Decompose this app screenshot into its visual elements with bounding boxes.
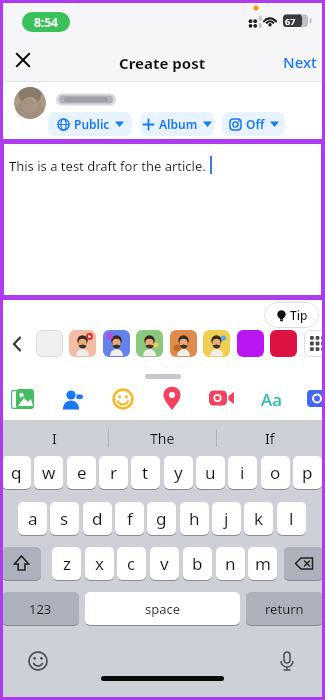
button[interactable]: l	[277, 502, 306, 535]
staticText: l	[289, 507, 294, 530]
button[interactable]: e	[67, 456, 96, 489]
button[interactable]	[111, 387, 135, 411]
staticText: 8:54	[34, 14, 58, 30]
button[interactable]	[170, 330, 197, 357]
staticText: u	[205, 461, 216, 484]
button[interactable]	[270, 330, 297, 357]
staticText: w	[42, 461, 56, 484]
button[interactable]: If	[216, 426, 324, 450]
button[interactable]: p	[293, 456, 322, 489]
button[interactable]: t	[131, 456, 160, 489]
button[interactable]: 8:54	[22, 12, 70, 32]
button[interactable]	[6, 332, 30, 356]
button[interactable]: space	[85, 592, 240, 625]
staticText: c	[127, 552, 136, 575]
staticText: f	[127, 507, 133, 530]
button[interactable]: j	[212, 502, 241, 535]
staticText: x	[95, 552, 104, 575]
button[interactable]	[2, 547, 41, 580]
button[interactable]: a	[18, 502, 47, 535]
button[interactable]: Next	[278, 48, 322, 76]
staticText: o	[270, 461, 281, 484]
button[interactable]: Album	[140, 112, 214, 136]
button[interactable]	[203, 330, 230, 357]
staticText: s	[60, 507, 69, 530]
staticText: n	[225, 552, 236, 575]
staticText: b	[192, 552, 203, 575]
button[interactable]	[36, 330, 63, 357]
staticText: j	[224, 507, 229, 530]
staticText: d	[92, 507, 103, 530]
button[interactable]: m	[248, 547, 277, 580]
staticText: Tip	[290, 307, 308, 323]
staticText: 67	[285, 15, 296, 27]
staticText: Create post	[119, 53, 206, 73]
staticText: Aa	[261, 388, 282, 411]
staticText: Next	[283, 52, 317, 72]
staticText: g	[156, 507, 167, 530]
button[interactable]: h	[180, 502, 209, 535]
staticText: e	[77, 461, 87, 484]
button[interactable]: k	[244, 502, 273, 535]
staticText: y	[174, 461, 183, 484]
button[interactable]: c	[117, 547, 146, 580]
button[interactable]	[307, 389, 325, 409]
button[interactable]: q	[2, 456, 31, 489]
staticText: h	[189, 507, 200, 530]
button[interactable]: g	[147, 502, 176, 535]
button[interactable]: d	[83, 502, 112, 535]
button[interactable]: x	[85, 547, 114, 580]
button[interactable]: u	[196, 456, 225, 489]
staticText: r	[110, 461, 118, 484]
button[interactable]	[161, 386, 183, 412]
staticText: Off	[246, 116, 265, 132]
button[interactable]: r	[99, 456, 128, 489]
staticText: The	[150, 429, 175, 448]
staticText: Album	[159, 116, 198, 132]
staticText: z	[63, 552, 71, 575]
staticText: m	[255, 552, 271, 575]
button[interactable]	[9, 46, 37, 74]
staticText: t	[142, 461, 149, 484]
button[interactable]: Off	[222, 112, 285, 136]
button[interactable]	[284, 547, 323, 580]
button[interactable]: Aa	[256, 386, 286, 412]
staticText: space	[145, 600, 181, 618]
button[interactable]: f	[115, 502, 144, 535]
button[interactable]: y	[164, 456, 193, 489]
button[interactable]: 123	[2, 592, 79, 625]
button[interactable]: o	[261, 456, 290, 489]
staticText: i	[240, 461, 245, 484]
button[interactable]: s	[50, 502, 79, 535]
staticText: a	[28, 507, 38, 530]
button[interactable]: The	[108, 426, 216, 450]
button[interactable]: I	[0, 426, 108, 450]
staticText: q	[11, 461, 22, 484]
staticText: return	[265, 600, 304, 618]
button[interactable]	[209, 389, 235, 409]
button[interactable]	[60, 387, 85, 412]
staticText: v	[160, 552, 169, 575]
staticText: I	[52, 429, 57, 448]
button[interactable]	[304, 330, 325, 357]
button[interactable]: return	[246, 592, 323, 625]
button[interactable]	[103, 330, 130, 357]
button[interactable]: v	[150, 547, 179, 580]
button[interactable]: b	[183, 547, 212, 580]
button[interactable]	[10, 387, 35, 412]
button[interactable]: w	[34, 456, 63, 489]
button[interactable]: Public	[48, 112, 132, 136]
staticText: Public	[74, 116, 110, 132]
staticText: p	[302, 461, 313, 484]
staticText: If	[265, 429, 275, 448]
button[interactable]: z	[52, 547, 81, 580]
button[interactable]: n	[216, 547, 245, 580]
button[interactable]: Tip	[264, 302, 319, 328]
button[interactable]	[136, 330, 163, 357]
staticText: This is a test draft for the article.	[9, 157, 206, 175]
button[interactable]: i	[228, 456, 257, 489]
button[interactable]	[237, 330, 264, 357]
staticText: k	[254, 507, 264, 530]
staticText: 123	[29, 600, 52, 618]
button[interactable]	[69, 330, 96, 357]
